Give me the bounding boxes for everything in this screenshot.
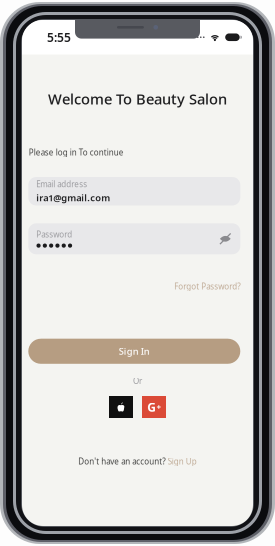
- staticText: Password: [36, 229, 72, 240]
- staticText: Welcome To Beauty Salon: [48, 89, 227, 108]
- staticText: ira1@gmail.com: [36, 191, 110, 204]
- button[interactable]: Show password: [216, 230, 234, 248]
- button[interactable]: Sign in with Google: [142, 396, 166, 418]
- staticText: Sign Up: [168, 456, 197, 467]
- button[interactable]: Forgot Password?: [174, 281, 240, 292]
- staticText: Forgot Password?: [174, 281, 240, 292]
- staticText: Don't have an account?: [78, 456, 165, 467]
- staticText: 5:55: [47, 29, 71, 45]
- staticText: Please log in To continue: [29, 147, 124, 158]
- staticText: Sign In: [119, 345, 150, 357]
- staticText: G: [147, 399, 156, 415]
- staticText: Or: [133, 375, 142, 386]
- button[interactable]: Sign in with Apple: [109, 396, 133, 418]
- staticText: Email address: [36, 179, 87, 189]
- button[interactable]: Sign In: [28, 339, 240, 364]
- button[interactable]: Don't have an account?: [78, 456, 197, 467]
